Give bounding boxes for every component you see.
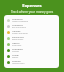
- staticText: Shopping: [12, 47, 23, 50]
- staticText: Bus and metro: [12, 26, 26, 29]
- staticText: Flights: [12, 56, 19, 59]
- button[interactable]: Groceries: [4, 17, 59, 23]
- staticText: Expenses: [22, 3, 42, 9]
- button[interactable]: Travel: [4, 53, 59, 59]
- staticText: Restaurants: [12, 38, 24, 41]
- staticText: Travel: [12, 53, 19, 56]
- staticText: Power and water: [12, 32, 28, 35]
- staticText: Monthly plan: [12, 62, 25, 65]
- staticText: Transport: [12, 23, 23, 26]
- staticText: Savings: [12, 59, 21, 62]
- button[interactable]: Utilities: [4, 29, 59, 35]
- staticText: Utilities: [12, 29, 21, 32]
- button[interactable]: Shopping: [4, 47, 59, 53]
- button[interactable]: Health: [4, 41, 59, 47]
- button[interactable]: Transport: [4, 23, 59, 29]
- staticText: Groceries: [12, 17, 23, 20]
- button[interactable]: Savings: [4, 59, 59, 65]
- staticText: Weekly shopping: [12, 20, 29, 23]
- staticText: Pharmacy: [12, 44, 22, 47]
- button[interactable]: Dining out: [4, 35, 59, 41]
- staticText: Dining out: [12, 35, 24, 38]
- staticText: Health: [12, 41, 20, 44]
- staticText: Clothes: [12, 50, 20, 53]
- staticText: Track where your money goes: [0, 10, 64, 14]
